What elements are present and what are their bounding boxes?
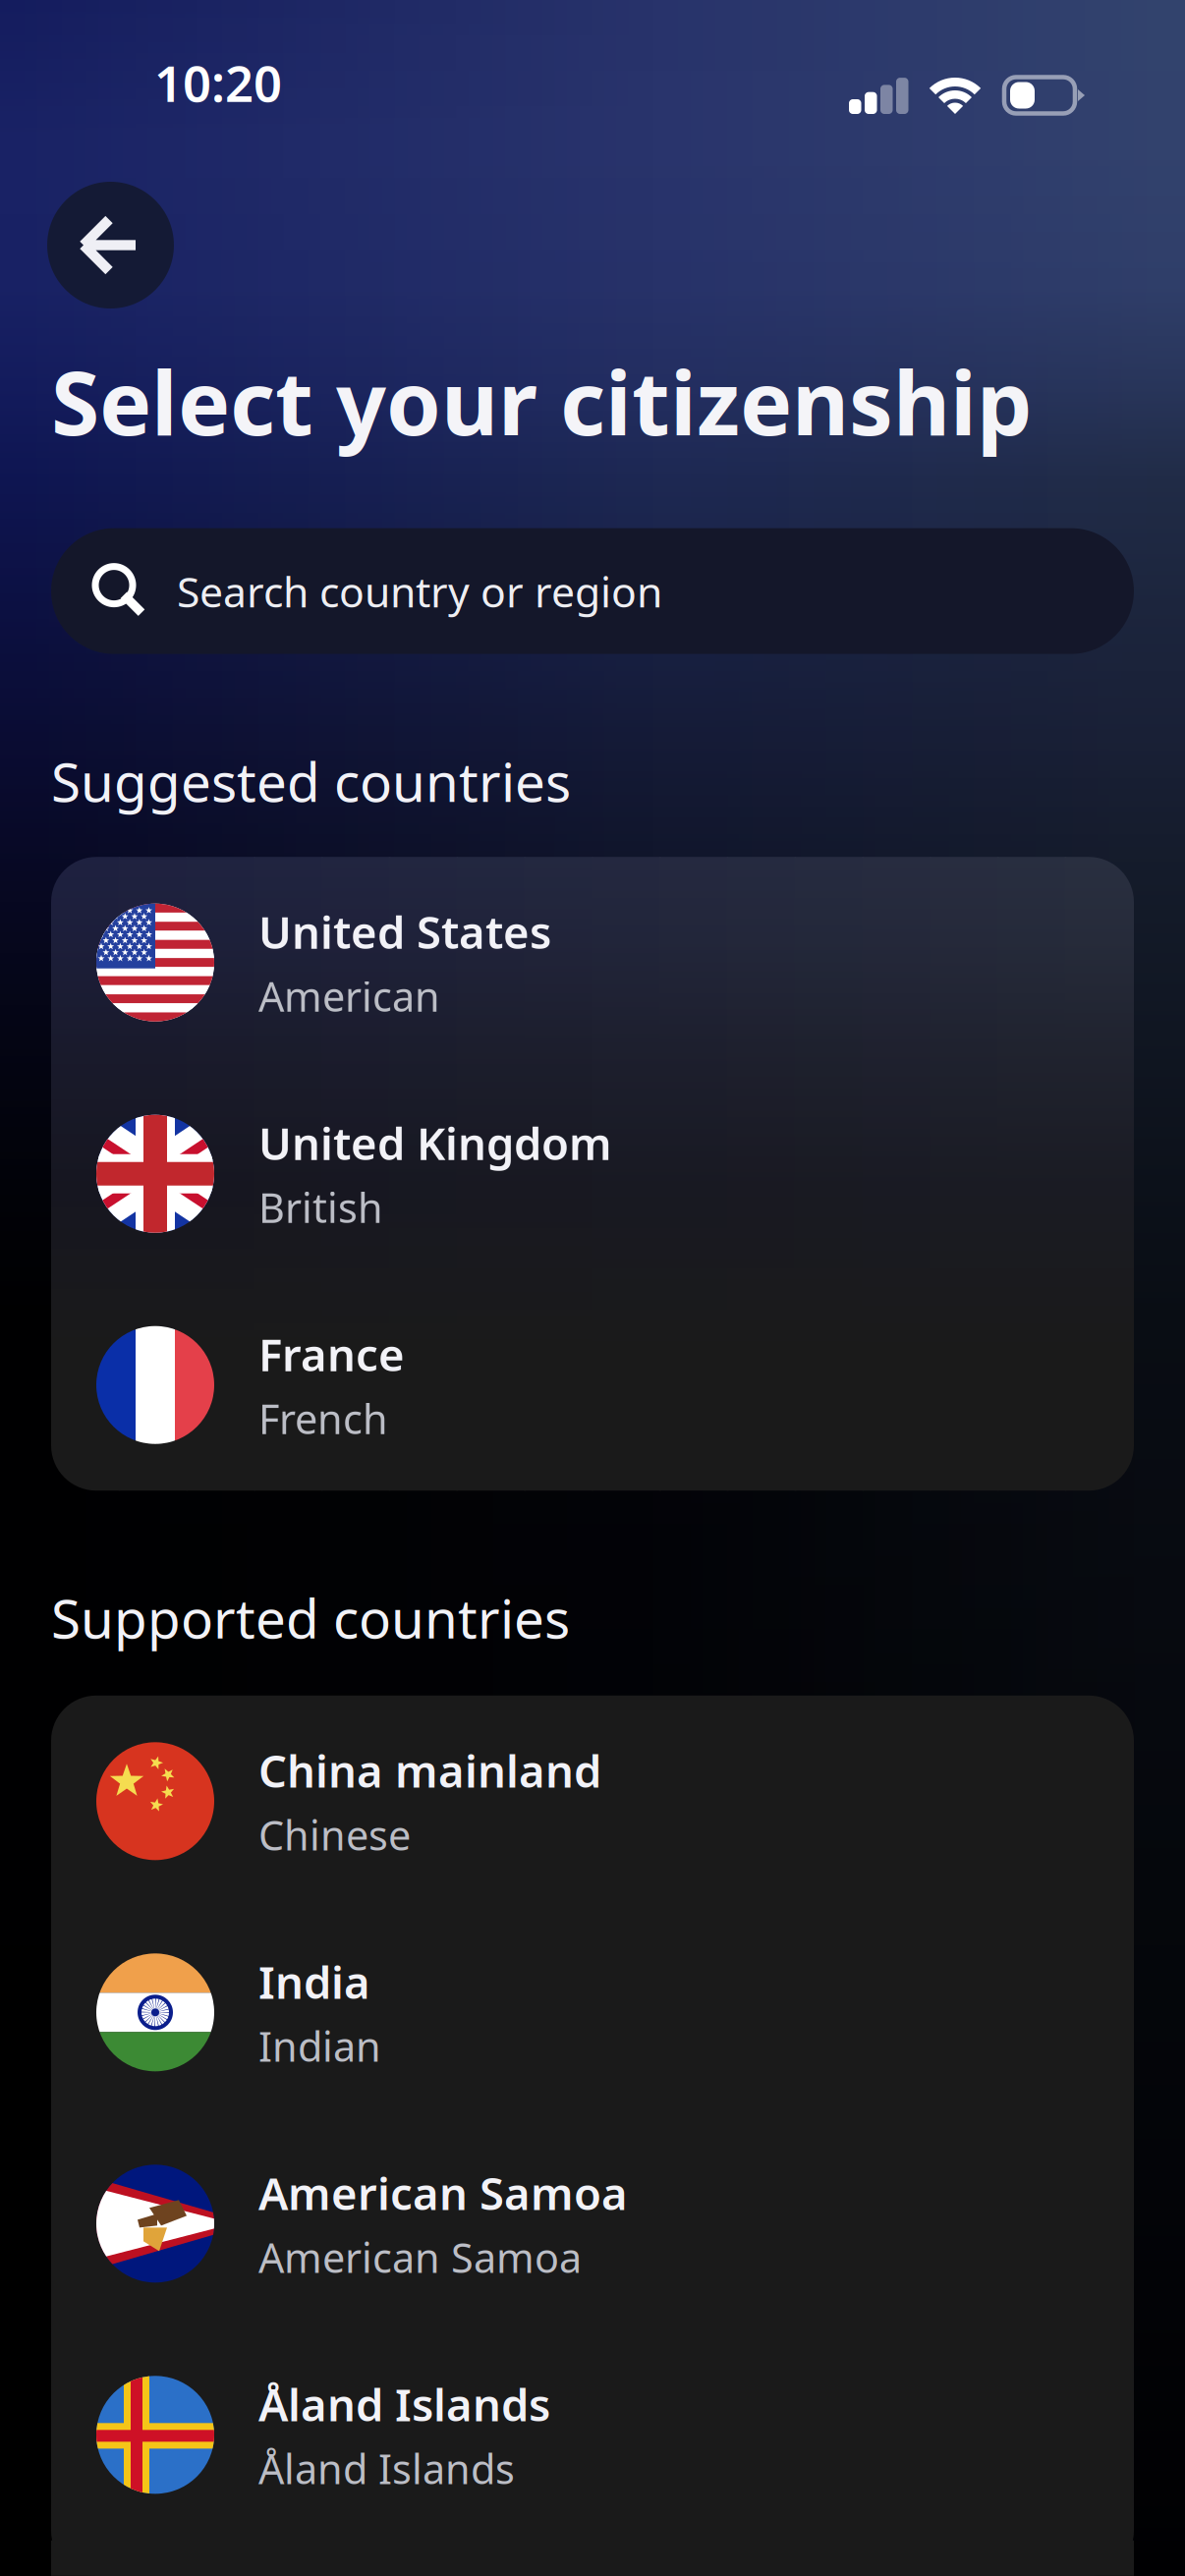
- button[interactable]: France: [51, 1279, 1134, 1491]
- staticText: Åland Islands: [258, 2374, 550, 2434]
- button[interactable]: Search country or region: [51, 528, 1134, 654]
- staticText: Suggested countries: [51, 745, 571, 817]
- button[interactable]: Back: [47, 182, 174, 308]
- staticText: 10:20: [154, 50, 282, 116]
- staticText: French: [258, 1392, 388, 1445]
- staticText: Supported countries: [51, 1582, 570, 1653]
- staticText: United States: [258, 902, 551, 961]
- staticText: Indian: [258, 2019, 381, 2073]
- staticText: Search country or region: [177, 563, 662, 619]
- staticText: American Samoa: [258, 2163, 628, 2222]
- button[interactable]: United States: [51, 857, 1134, 1068]
- staticText: United Kingdom: [258, 1113, 612, 1172]
- staticText: China mainland: [258, 1741, 601, 1800]
- button[interactable]: Åland Islands: [51, 2329, 1134, 2540]
- staticText: Chinese: [258, 1808, 411, 1862]
- staticText: American: [258, 969, 440, 1023]
- staticText: Åland Islands: [258, 2441, 515, 2495]
- button[interactable]: United Kingdom: [51, 1068, 1134, 1279]
- staticText: France: [258, 1325, 405, 1384]
- button[interactable]: India: [51, 1907, 1134, 2118]
- button[interactable]: China mainland: [51, 1696, 1134, 1907]
- staticText: Select your citizenship: [51, 343, 1032, 459]
- button[interactable]: American Samoa: [51, 2118, 1134, 2329]
- staticText: British: [258, 1180, 383, 1234]
- staticText: American Samoa: [258, 2230, 582, 2284]
- staticText: India: [258, 1952, 370, 2011]
